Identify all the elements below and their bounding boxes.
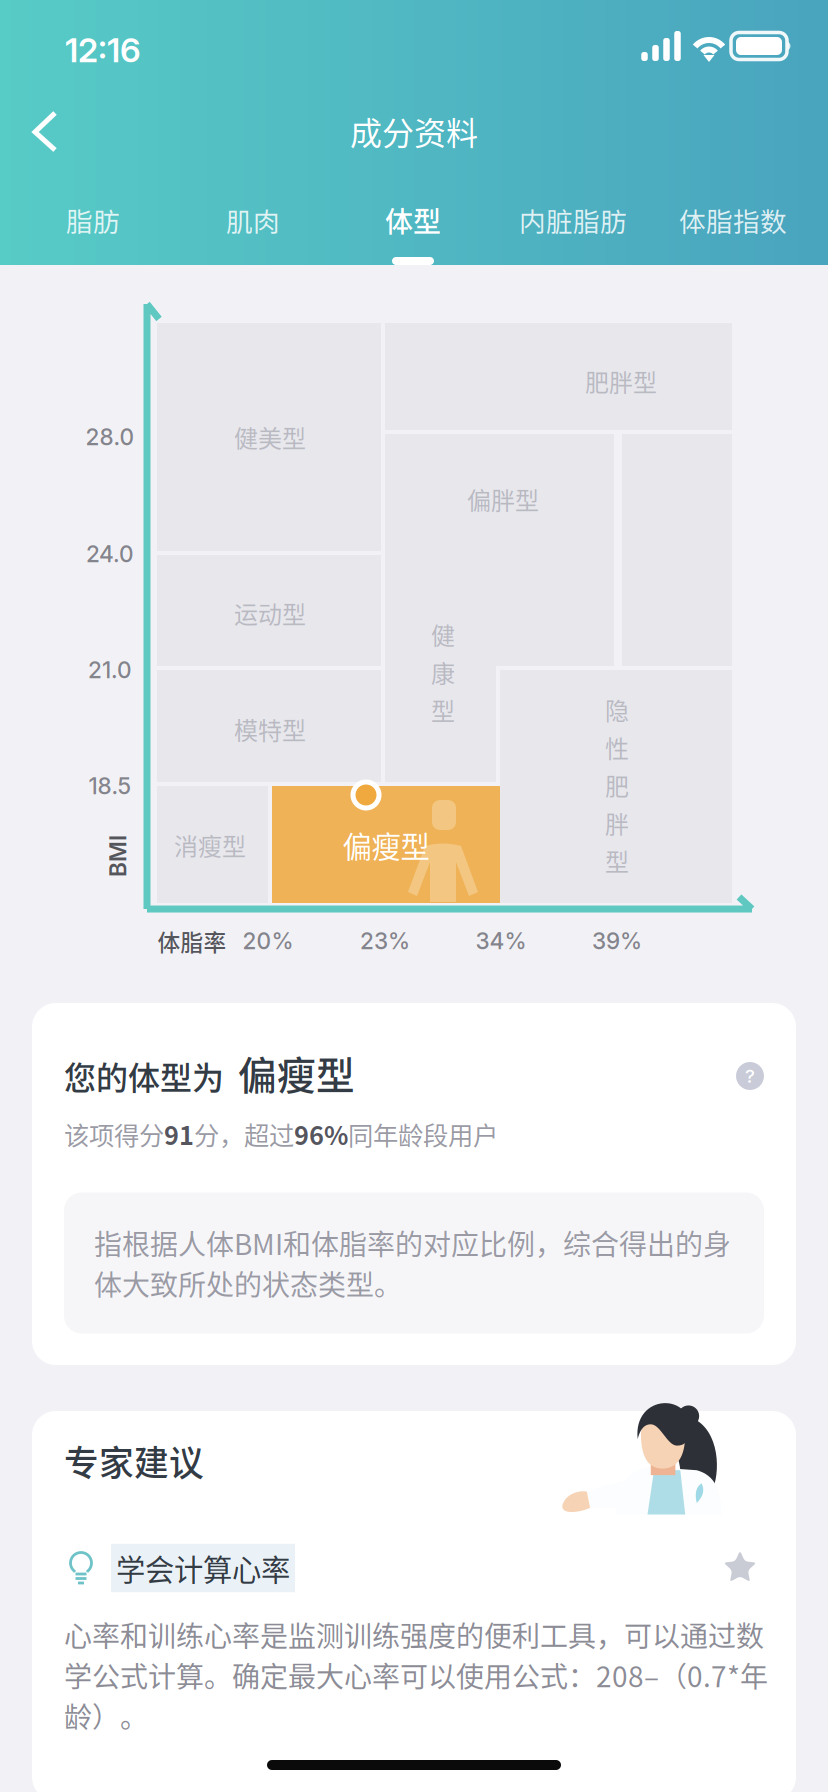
staticText: 康	[431, 655, 455, 689]
staticText: 18.5	[88, 772, 131, 800]
staticText: 型	[605, 843, 629, 878]
staticText: 同年龄段用户	[348, 1116, 498, 1152]
staticText: 内脏脂肪	[519, 201, 627, 239]
staticText: 心率和训练心率是监测训练强度的便利工具，可以通过数学公式计算。确定最大心率可以使…	[64, 1614, 768, 1736]
staticText: 偏瘦型	[342, 824, 429, 866]
staticText: 23%	[360, 927, 410, 955]
staticText: 分，超过	[194, 1116, 294, 1152]
staticText: 成分资料	[350, 108, 478, 154]
staticText: 运动型	[234, 596, 306, 630]
staticText: 肥	[605, 768, 629, 802]
staticText: 12:16	[65, 30, 141, 70]
button[interactable]: 返回	[0, 86, 90, 176]
staticText: 91	[164, 1116, 194, 1152]
staticText: 脂肪	[66, 201, 120, 239]
staticText: 该项得分	[64, 1116, 164, 1152]
staticText: 96%	[294, 1116, 348, 1152]
staticText: 指根据人体BMI和体脂率的对应比例，综合得出的身体大致所处的状态类型。	[94, 1222, 731, 1304]
staticText: 健	[431, 617, 455, 652]
button[interactable]: 内脏脂肪	[493, 190, 653, 282]
button[interactable]: 说明	[722, 1048, 778, 1104]
staticText: 体型	[385, 200, 441, 240]
button[interactable]: 收藏	[712, 1540, 768, 1596]
staticText: 消瘦型	[174, 828, 246, 862]
staticText: 20%	[242, 927, 293, 955]
staticText: 21.0	[88, 656, 132, 684]
staticText: 型	[431, 692, 455, 727]
button[interactable]: 体脂指数	[653, 190, 813, 282]
button[interactable]: 体型	[333, 190, 493, 282]
button[interactable]: 肌肉	[173, 190, 333, 282]
staticText: 28.0	[85, 423, 134, 451]
staticText: 肥胖型	[585, 364, 657, 398]
staticText: 隐	[605, 692, 629, 727]
staticText: 24.0	[86, 540, 134, 568]
staticText: 偏胖型	[467, 482, 539, 516]
staticText: 肌肉	[226, 201, 280, 239]
staticText: 体脂率	[157, 925, 226, 957]
staticText: 偏瘦型	[238, 1045, 355, 1101]
staticText: 胖	[605, 805, 629, 840]
staticText: BMI	[97, 842, 139, 870]
staticText: 学会计算心率	[116, 1547, 290, 1589]
staticText: 模特型	[234, 712, 306, 746]
staticText: 性	[605, 730, 629, 765]
button[interactable]: 脂肪	[13, 190, 173, 282]
staticText: ?	[745, 1065, 755, 1087]
staticText: 您的体型为	[64, 1053, 224, 1099]
staticText: 34%	[475, 927, 526, 955]
staticText: 体脂指数	[679, 201, 787, 239]
staticText: 专家建议	[64, 1436, 204, 1486]
staticText: 39%	[592, 927, 642, 955]
staticText: 健美型	[234, 420, 306, 454]
